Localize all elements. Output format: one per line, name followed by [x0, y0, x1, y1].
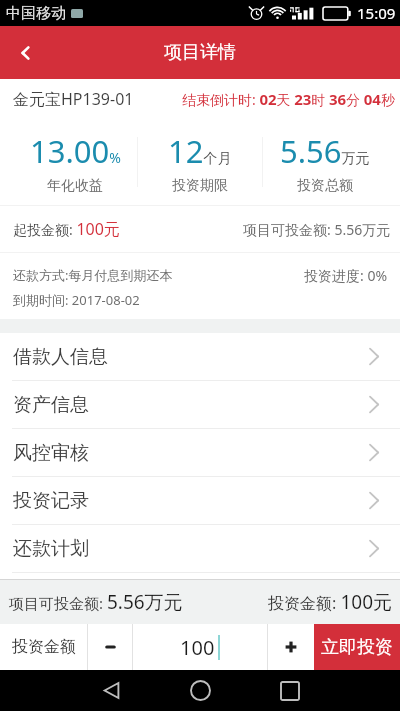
button[interactable]: 风控审核 [0, 429, 400, 476]
button[interactable]: Decrease amount [88, 624, 132, 670]
button[interactable]: 投资记录 [0, 477, 400, 524]
staticText: 风控审核 [13, 441, 89, 465]
button[interactable]: 资产信息 [0, 381, 400, 428]
staticText: 12个月 [168, 130, 232, 172]
staticText: 项目可投金额: 5.56万元 [9, 589, 183, 615]
button[interactable]: Increase amount [268, 624, 314, 670]
staticText: 13.00% [30, 130, 121, 172]
staticText: 还款方式:每月付息到期还本 [13, 266, 173, 284]
staticText: 投资总额 [297, 177, 353, 195]
staticText: 投资进度: 0% [304, 266, 388, 285]
staticText: 15:09 [357, 3, 396, 23]
button[interactable]: Back [0, 26, 52, 79]
staticText: 5.56万元 [280, 130, 370, 172]
staticText: 年化收益 [47, 177, 103, 195]
staticText: 还款计划 [13, 537, 89, 561]
staticText: 100 [180, 634, 215, 661]
button[interactable]: 还款计划 [0, 525, 400, 572]
staticText: 项目详情 [164, 41, 236, 64]
staticText: 起投金额: 100元 [13, 218, 120, 240]
staticText: 投资金额: 100元 [268, 589, 393, 615]
staticText: 立即投资 [321, 636, 393, 659]
staticText: 借款人信息 [13, 345, 108, 369]
button[interactable]: 借款人信息 [0, 333, 400, 380]
staticText: 资产信息 [13, 393, 89, 417]
staticText: 到期时间: 2017-08-02 [13, 291, 140, 309]
staticText: 中国移动 [6, 4, 66, 23]
staticText: 投资期限 [172, 177, 228, 195]
button[interactable]: 立即投资 [314, 624, 400, 670]
staticText: 项目可投金额: 5.56万元 [243, 220, 391, 239]
button[interactable]: Home [156, 670, 245, 711]
staticText: 投资记录 [13, 489, 89, 513]
staticText: 投资金额 [12, 637, 76, 657]
button[interactable]: Recent apps [245, 670, 334, 711]
button[interactable]: Back [67, 670, 156, 711]
staticText: 结束倒计时: 02天 23时 36分 04秒 [182, 89, 395, 109]
button[interactable]: 100 [133, 624, 267, 670]
staticText: 金元宝HP139-01 [13, 88, 134, 110]
